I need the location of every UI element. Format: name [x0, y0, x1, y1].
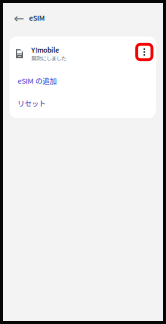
staticText: eSIM の追加: [17, 75, 56, 86]
button[interactable]: Back: [11, 10, 26, 26]
staticText: リセット: [17, 98, 45, 108]
button[interactable]: More options: [135, 43, 153, 61]
button[interactable]: リセット: [9, 92, 156, 114]
staticText: eSIM: [29, 12, 45, 23]
staticText: Y!mobile: [31, 45, 59, 55]
staticText: 無効にしました: [31, 54, 66, 62]
button[interactable]: eSIM の追加: [9, 69, 156, 92]
